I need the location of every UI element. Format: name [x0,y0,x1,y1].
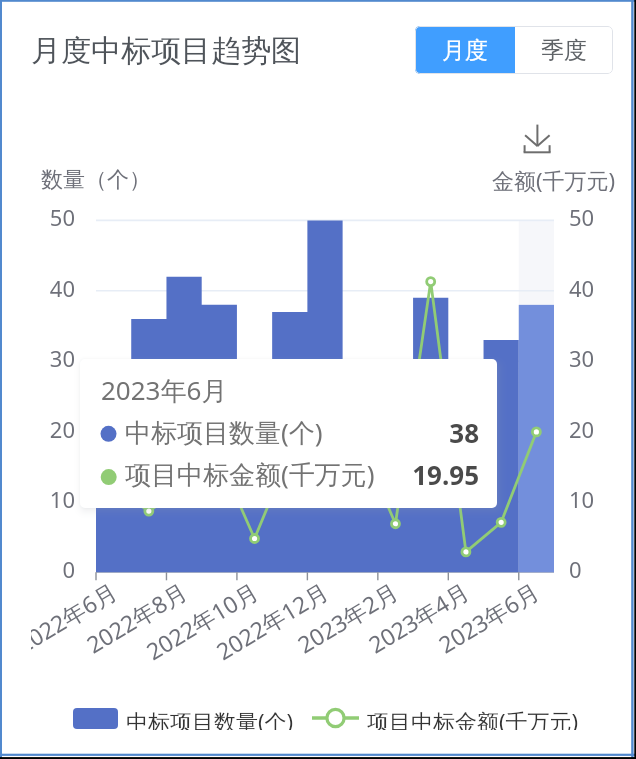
staticText: 0 [43,554,75,584]
staticText: 2022年8月 [80,575,192,659]
staticText: 数量（个） [41,166,151,194]
staticText: 中标项目数量(个) [125,414,323,450]
staticText: 50 [43,202,75,232]
button[interactable]: 项目中标金额(千万元) [312,706,579,730]
staticText: 10 [43,484,75,514]
staticText: 项目中标金额(千万元) [367,706,579,730]
staticText: 19.95 [378,457,479,492]
staticText: 月度中标项目趋势图 [31,32,301,70]
staticText: 30 [569,343,609,373]
button[interactable]: 月度 [415,26,515,74]
staticText: 20 [569,414,609,444]
staticText: 2023年6月 [101,372,228,408]
staticText: 季度 [541,36,587,65]
staticText: 20 [43,414,75,444]
staticText: 38 [378,415,479,450]
staticText: 2023年2月 [291,575,403,659]
staticText: 2022年6月 [31,575,122,659]
button[interactable]: 中标项目数量(个) [73,706,294,730]
button[interactable]: 季度 [515,26,613,74]
staticText: 金额(千万元) [492,165,616,195]
staticText: 50 [569,202,609,232]
staticText: 40 [43,273,75,303]
staticText: 40 [569,273,609,303]
staticText: 月度 [442,36,488,65]
button[interactable]: Download [519,119,557,157]
staticText: 项目中标金额(千万元) [125,456,375,492]
staticText: 2023年4月 [362,575,474,659]
staticText: 0 [569,554,609,584]
staticText: 30 [43,343,75,373]
staticText: 10 [569,484,609,514]
staticText: 2023年6月 [432,575,544,659]
staticText: 2022年10月 [140,575,263,662]
staticText: 中标项目数量(个) [126,706,294,730]
staticText: 2022年12月 [210,575,333,662]
